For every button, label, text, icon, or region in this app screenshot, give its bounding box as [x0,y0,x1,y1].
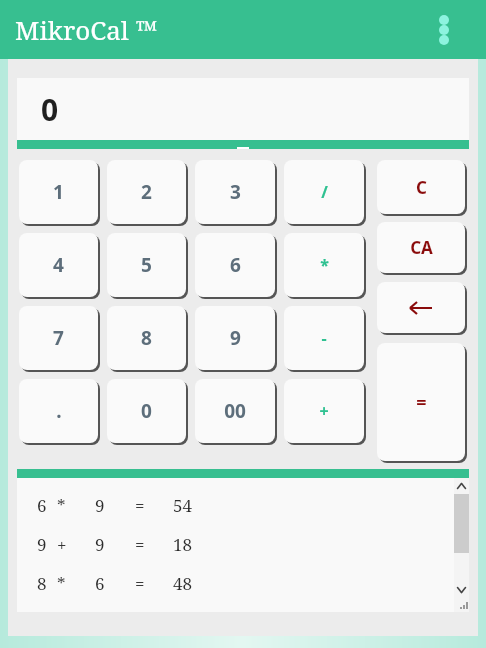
staticText: = [416,390,427,415]
button[interactable]: 4 [19,233,98,297]
button[interactable]: + [284,379,364,443]
staticText: 0 [141,398,152,424]
staticText: 6 [37,494,47,517]
button[interactable]: 7 [19,306,98,370]
staticText: 6 [95,572,105,595]
staticText: = [135,572,145,595]
staticText: 54 [173,494,193,517]
staticText: * [320,254,329,276]
staticText: 48 [173,572,193,595]
button[interactable]: / [284,160,364,224]
staticText: 3 [230,179,241,205]
staticText: * [57,572,66,595]
staticText: 4 [53,252,64,278]
staticText: / [321,181,328,203]
staticText: 5 [141,252,152,278]
button[interactable]: 0 [107,379,186,443]
staticText: = [135,533,145,556]
button[interactable]: 9 [195,306,275,370]
staticText: . [56,398,62,424]
button[interactable]: - [284,306,364,370]
staticText: * [57,494,66,517]
button[interactable]: CA [377,222,465,273]
staticText: = [135,494,145,517]
button[interactable]: 00 [195,379,275,443]
staticText: 6 [230,252,241,278]
staticText: 9 [95,494,105,517]
staticText: 18 [173,533,193,556]
staticText: + [319,400,329,422]
button[interactable]: 8 [107,306,186,370]
staticText: 1 [53,179,64,205]
staticText: 9 [230,325,241,351]
staticText: C [416,176,427,199]
staticText: 8 [37,572,47,595]
button[interactable]: 6 [195,233,275,297]
button[interactable]: 2 [107,160,186,224]
staticText: + [57,533,67,556]
staticText: 8 [141,325,152,351]
button[interactable]: = [377,343,465,461]
staticText: 7 [53,325,64,351]
button[interactable]: Scroll history [454,478,469,612]
button[interactable]: More options [439,15,449,45]
staticText: 00 [224,398,246,424]
staticText: 2 [141,179,152,205]
staticText: MikroCal ™ [15,12,158,47]
button[interactable]: C [377,160,465,214]
staticText: CA [410,236,433,259]
button[interactable]: 5 [107,233,186,297]
button[interactable]: 1 [19,160,98,224]
staticText: - [321,327,327,349]
button[interactable]: 3 [195,160,275,224]
staticText: 0 [41,89,59,130]
staticText: 9 [37,533,47,556]
button[interactable]: * [284,233,364,297]
button[interactable]: . [19,379,98,443]
button[interactable]: Backspace [377,282,465,333]
staticText: 9 [95,533,105,556]
